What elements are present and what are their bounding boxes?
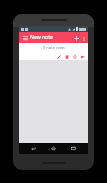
button[interactable]: Edit [55, 53, 62, 60]
staticText: New note [30, 34, 53, 41]
staticText: 0 note rows [43, 45, 65, 50]
button[interactable]: Add note [72, 34, 80, 42]
button[interactable]: Home [48, 143, 59, 154]
button[interactable]: 0 note rows [19, 43, 88, 60]
button[interactable]: Open navigation menu [21, 34, 29, 42]
button[interactable]: Share [79, 53, 86, 60]
button[interactable]: Reminder [71, 53, 78, 60]
button[interactable]: Back [28, 143, 39, 154]
button[interactable]: Recent apps [68, 143, 79, 154]
button[interactable]: More options [80, 35, 87, 42]
button[interactable]: Delete [63, 53, 70, 60]
